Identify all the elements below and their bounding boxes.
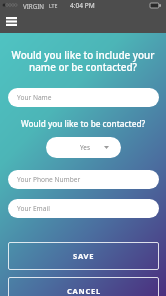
staticText: CANCEL bbox=[67, 286, 101, 296]
staticText: VIRGIN bbox=[23, 2, 44, 10]
staticText: 4:04 PM bbox=[70, 1, 95, 10]
staticText: SAVE bbox=[73, 251, 95, 261]
button[interactable]: Open navigation menu bbox=[0, 12, 22, 31]
button[interactable]: Your Name bbox=[8, 88, 159, 107]
button[interactable]: Your Phone Number bbox=[8, 170, 159, 189]
staticText: LTE bbox=[49, 2, 58, 9]
staticText: Would you like to be contacted? bbox=[0, 118, 166, 129]
staticText: Your Phone Number bbox=[17, 175, 81, 184]
button[interactable]: SAVE bbox=[8, 242, 159, 270]
staticText: Would you like to include your name or b… bbox=[5, 48, 161, 74]
staticText: Yes bbox=[80, 143, 90, 152]
button[interactable]: CANCEL bbox=[8, 277, 159, 296]
staticText: Your Name bbox=[17, 93, 52, 102]
button[interactable]: Yes bbox=[46, 137, 121, 158]
button[interactable]: Your Email bbox=[8, 199, 159, 218]
staticText: Your Email bbox=[17, 204, 50, 213]
